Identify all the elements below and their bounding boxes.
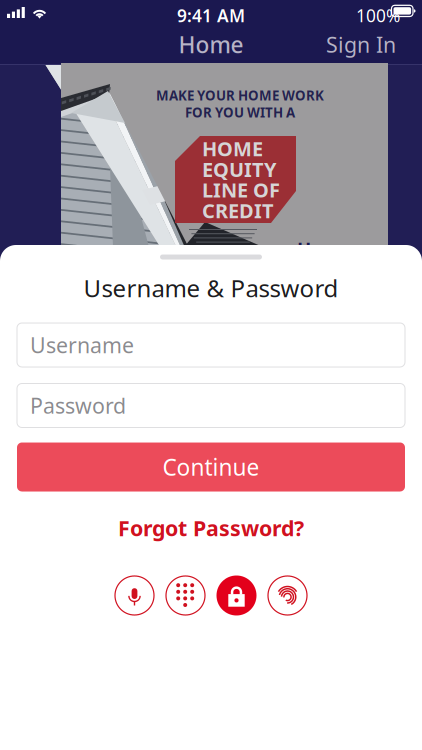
button[interactable]: Forgot Password? <box>96 513 326 543</box>
staticText: CREDIT <box>202 197 274 224</box>
staticText: Sign In <box>326 30 396 59</box>
staticText: Forgot Password? <box>118 514 304 542</box>
staticText: FOR YOU WITH A <box>185 103 295 121</box>
button[interactable]: Voice sign in <box>114 575 155 616</box>
button[interactable]: Touch ID sign in <box>267 575 308 616</box>
staticText: Password <box>30 391 126 420</box>
staticText: 100% <box>356 4 400 27</box>
staticText: Continue <box>162 452 259 482</box>
button[interactable]: Continue <box>17 442 405 491</box>
button[interactable]: Password <box>17 383 405 427</box>
staticText: 9:41 AM <box>177 4 245 27</box>
staticText: Username & Password <box>83 272 338 304</box>
button[interactable]: Passcode sign in <box>165 575 206 616</box>
button[interactable]: Secure sign in <box>216 575 257 616</box>
button[interactable]: Sign In <box>316 25 406 64</box>
staticText: Home <box>297 237 352 262</box>
staticText: LINE OF <box>202 176 280 203</box>
button[interactable]: Home <box>146 25 276 64</box>
staticText: MAKE YOUR HOME WORK <box>156 86 324 104</box>
staticText: Home <box>178 29 243 59</box>
staticText: Username <box>30 331 134 359</box>
staticText: EQUITY <box>202 156 277 182</box>
staticText: HOME <box>202 135 263 162</box>
button[interactable]: Username <box>17 323 405 367</box>
